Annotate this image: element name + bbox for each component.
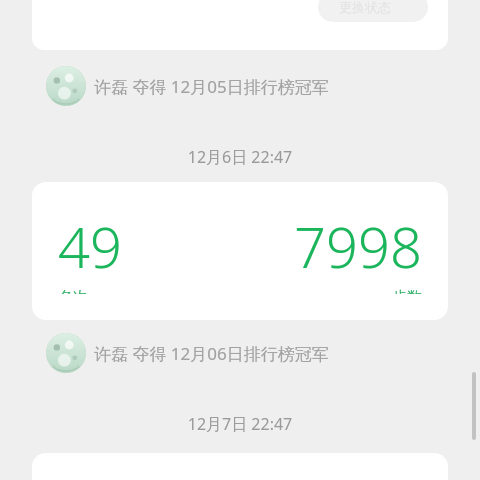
button[interactable]: 更换状态 xyxy=(32,0,448,50)
button[interactable]: 用户头像 xyxy=(46,66,329,106)
staticText: 49 xyxy=(58,208,122,284)
staticText: 名次 xyxy=(58,288,88,294)
staticText: 许磊 夺得 12月05日排行榜冠军 xyxy=(94,75,329,98)
other: 用户头像 xyxy=(46,333,86,373)
staticText: 12月6日 22:47 xyxy=(0,146,480,168)
staticText: 步数 xyxy=(392,288,422,294)
button[interactable]: 用户头像 xyxy=(46,333,329,373)
button[interactable]: 更换状态 xyxy=(318,0,428,22)
staticText: 7998 xyxy=(294,208,422,284)
staticText: 12月7日 22:47 xyxy=(0,413,480,435)
button[interactable]: 49 xyxy=(32,182,448,320)
other: 用户头像 xyxy=(46,66,86,106)
staticText: 许磊 夺得 12月06日排行榜冠军 xyxy=(94,342,329,365)
staticText: 更换状态 xyxy=(339,0,391,15)
